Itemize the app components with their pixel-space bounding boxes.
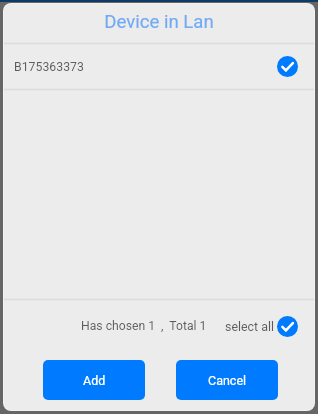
button[interactable]: Add (43, 360, 145, 400)
button[interactable]: select all (225, 316, 298, 337)
staticText: Has chosen 1 , Total 1 (81, 319, 207, 333)
staticText: B175363373 (14, 60, 84, 74)
staticText: Cancel (208, 373, 247, 388)
button[interactable]: Device selected (277, 56, 298, 77)
staticText: Add (83, 373, 106, 388)
staticText: Device in Lan (104, 11, 214, 33)
button[interactable]: Cancel (176, 360, 278, 400)
button[interactable]: B175363373 (4, 44, 314, 89)
staticText: select all (225, 319, 274, 334)
